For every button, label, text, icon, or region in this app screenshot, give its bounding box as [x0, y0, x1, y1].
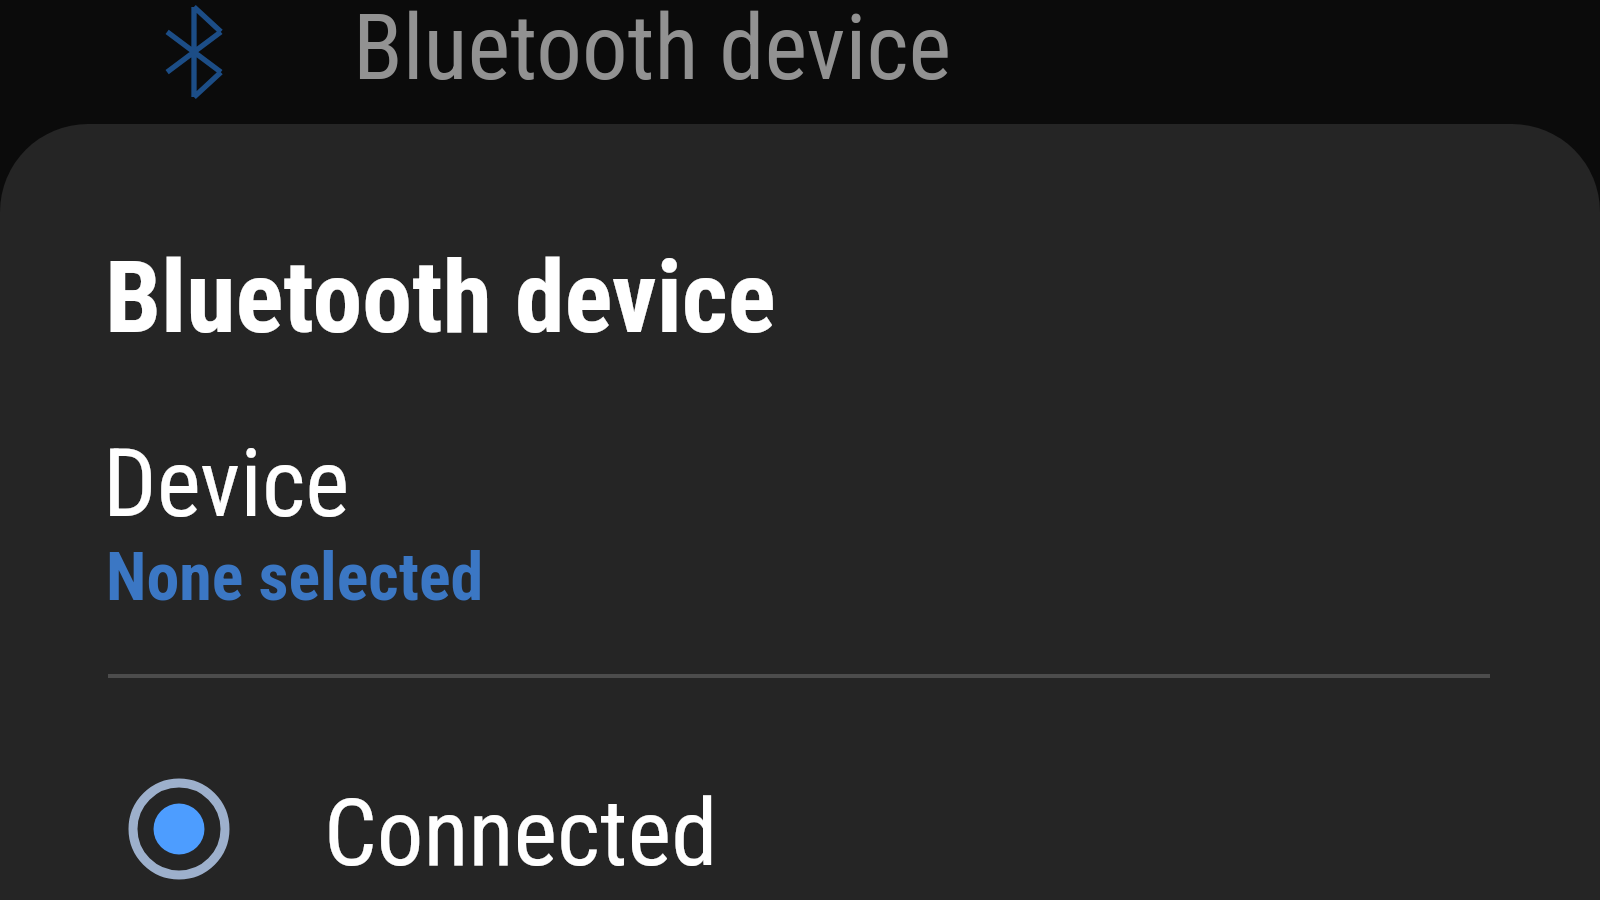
button[interactable]: Bluetooth	[0, 0, 1600, 124]
staticText: None selected	[106, 539, 484, 616]
button[interactable]: Connected	[0, 749, 1600, 900]
staticText: Connected	[324, 779, 718, 888]
staticText: Bluetooth device	[353, 0, 952, 102]
staticText: Bluetooth device	[105, 239, 776, 356]
other: Bluetooth	[166, 5, 222, 99]
staticText: Device	[103, 429, 350, 539]
button[interactable]: Device	[0, 392, 1600, 642]
